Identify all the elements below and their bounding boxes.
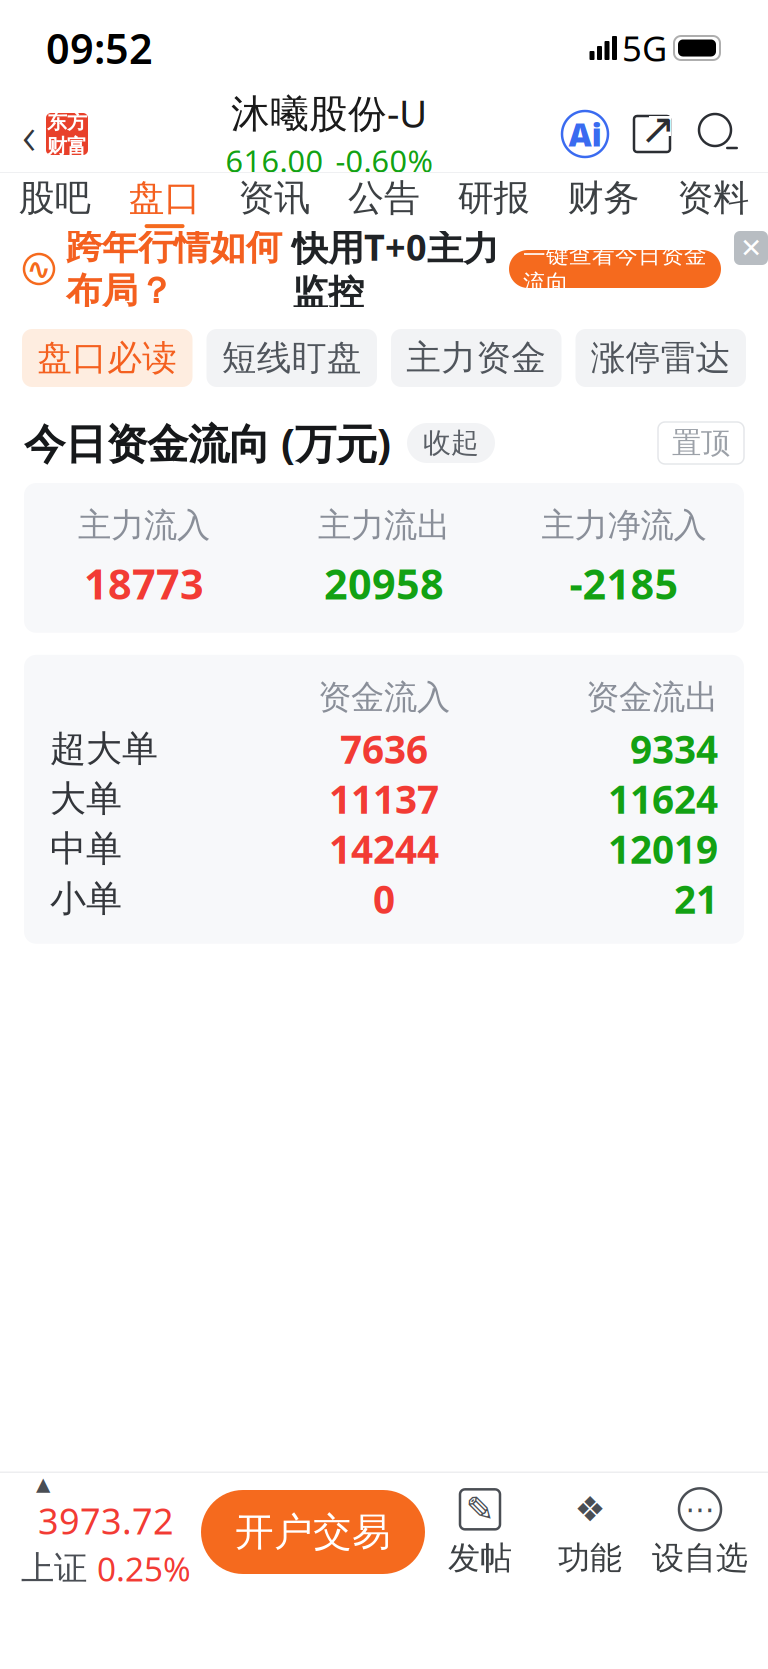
button[interactable]: 收起	[407, 423, 495, 463]
staticText: -2185	[57, 1472, 162, 1525]
staticText: 东方 财富	[47, 109, 87, 158]
staticText: Ai	[568, 113, 601, 155]
staticText: 14244	[329, 823, 439, 874]
button[interactable]: ❖	[535, 1486, 645, 1578]
button[interactable]: 涨停雷达	[575, 329, 746, 387]
staticText: 今日资金流向 (万元)	[24, 416, 391, 470]
staticText: 0.25%	[97, 1546, 191, 1591]
staticText: 研报	[458, 176, 530, 220]
button[interactable]: 5日净流入	[207, 1403, 378, 1560]
staticText: 18773	[84, 556, 204, 611]
button[interactable]: 开户交易	[201, 1490, 425, 1574]
staticText: 主力流出	[318, 505, 450, 546]
button[interactable]: 当日净流入	[24, 1404, 195, 1559]
staticText: 616.00	[225, 140, 323, 181]
staticText: 5G	[622, 25, 667, 71]
staticText: 资金流出	[586, 677, 718, 718]
button[interactable]: Close banner	[734, 231, 768, 265]
staticText: 小单	[50, 877, 122, 921]
staticText: 股价 (元)	[343, 1562, 462, 1603]
staticText: -46370	[594, 1473, 722, 1526]
button[interactable]: 盘口	[110, 173, 219, 231]
staticText: 设自选	[652, 1538, 748, 1578]
staticText: ✕	[740, 233, 762, 263]
button[interactable]: 研报	[439, 173, 549, 231]
button[interactable]: 财务	[549, 173, 658, 231]
staticText: ▲	[36, 1473, 50, 1495]
staticText: -2185	[569, 556, 678, 611]
staticText: 跨年行情如何布局？	[66, 225, 282, 313]
button[interactable]: Share	[630, 112, 674, 156]
staticText: 21	[674, 873, 718, 924]
staticText: 上证	[21, 1548, 87, 1589]
button[interactable]: ∿	[0, 231, 768, 307]
staticText: -0.60%	[335, 140, 432, 181]
staticText: 股吧	[19, 176, 91, 220]
staticText: 7636	[340, 723, 428, 774]
button[interactable]: ⋯	[645, 1486, 755, 1578]
button[interactable]: 股吧	[0, 173, 110, 231]
staticText: 主力净流入 (万元)	[49, 1562, 292, 1603]
staticText: 开户交易	[235, 1508, 391, 1556]
button[interactable]: 短线盯盘	[206, 329, 377, 387]
button[interactable]: Back	[0, 96, 96, 172]
staticText: ▾	[102, 1534, 117, 1567]
button[interactable]: 主力资金	[391, 329, 561, 387]
staticText: 盘口	[129, 176, 201, 220]
button[interactable]: 资料	[658, 173, 768, 231]
button[interactable]: 60日净流入	[573, 1403, 744, 1560]
staticText: 20958	[324, 556, 444, 611]
staticText: -46370	[411, 1473, 539, 1526]
staticText: 超大单	[50, 727, 158, 771]
button[interactable]: AI assistant	[562, 111, 608, 157]
button[interactable]: 20日净流入	[390, 1403, 561, 1560]
staticText: ↗	[640, 105, 676, 153]
staticText	[471, 1533, 479, 1572]
button[interactable]: 公告	[329, 173, 439, 231]
staticText: 财务	[567, 176, 639, 220]
staticText: ‹	[22, 99, 36, 169]
staticText: ∿	[26, 252, 51, 286]
button[interactable]: Search	[696, 111, 742, 157]
staticText: 公告	[348, 176, 420, 220]
button[interactable]: 置顶	[658, 422, 744, 464]
button[interactable]: 资讯	[219, 173, 329, 231]
button[interactable]: 盘口必读	[22, 329, 192, 387]
staticText: 一键查看今日资金流向	[523, 241, 707, 297]
button[interactable]: ▲	[0, 1473, 201, 1591]
staticText: ⋯	[685, 1493, 714, 1526]
staticText: 主力资金	[406, 337, 546, 379]
staticText: 09:52	[46, 21, 153, 75]
staticText: 主力净流入	[541, 505, 706, 546]
button[interactable]: ✎	[425, 1486, 535, 1578]
staticText: 大单	[50, 777, 122, 821]
staticText: 收起	[423, 426, 479, 460]
staticText: 11624	[608, 773, 718, 824]
staticText: 盘口必读	[37, 337, 177, 379]
staticText: 0	[373, 873, 395, 924]
staticText: ✎	[465, 1490, 494, 1529]
staticText: 快用T+0主力监控	[292, 223, 499, 315]
staticText: 资金流入	[318, 677, 450, 718]
staticText: 12019	[608, 823, 718, 874]
staticText: 置顶	[672, 425, 730, 461]
